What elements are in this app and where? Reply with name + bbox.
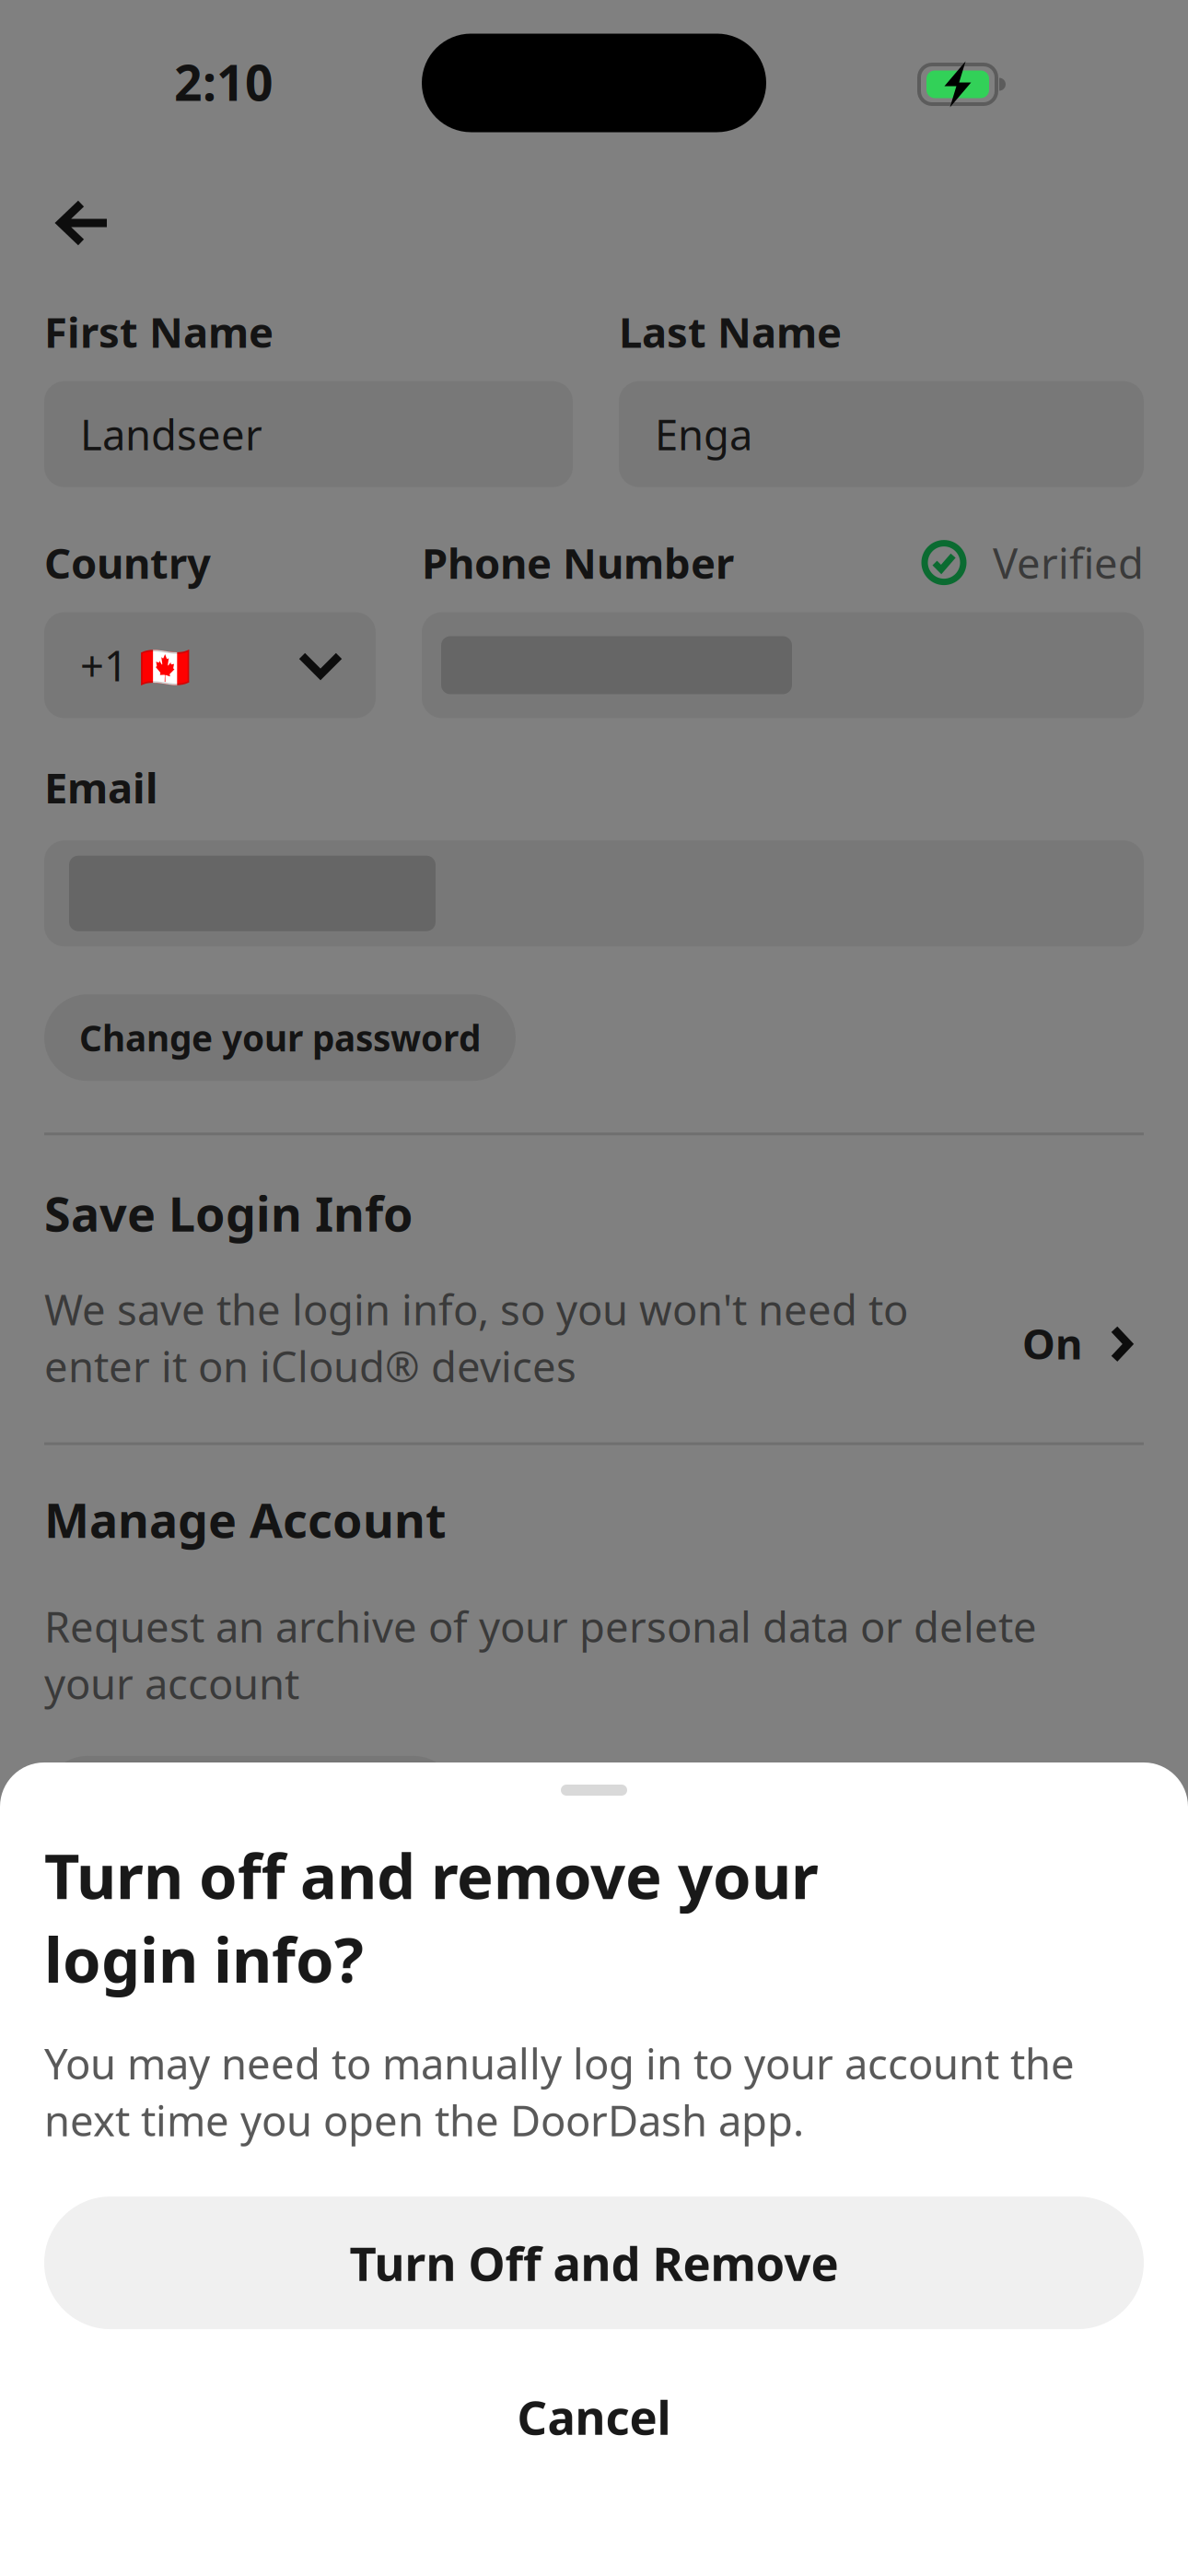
button[interactable]: Change your password <box>44 994 516 1081</box>
staticText: Enga <box>655 406 752 463</box>
staticText: Verified <box>993 534 1144 591</box>
staticText: Country <box>44 534 211 591</box>
staticText: First Name <box>44 303 274 360</box>
button[interactable]: Manage Account <box>44 1445 1144 1712</box>
staticText: You may need to manually log in to your … <box>44 2035 1075 2149</box>
staticText: Phone Number <box>422 534 734 591</box>
staticText: +1 🇨🇦 <box>80 637 191 694</box>
staticText: Change your password <box>79 1013 481 1062</box>
button[interactable]: Turn Off and Remove <box>44 2197 1144 2329</box>
staticText: Request an archive of your personal data… <box>44 1598 1037 1712</box>
staticText: 2:10 <box>174 48 274 115</box>
staticText: We save the login info, so you won't nee… <box>44 1281 908 1395</box>
staticText: Landseer <box>80 406 262 463</box>
staticText: Manage Account <box>44 1487 447 1552</box>
button[interactable]: Cancel <box>44 2385 1144 2448</box>
staticText: Turn Off and Remove <box>349 2231 839 2295</box>
staticText: Last Name <box>619 303 842 360</box>
staticText: Turn off and remove your login info? <box>44 1833 819 2001</box>
staticText: Save Login Info <box>44 1180 413 1246</box>
staticText: Cancel <box>517 2385 671 2448</box>
button[interactable]: Request an archive <box>44 1756 457 1843</box>
button[interactable]: Back <box>44 157 147 264</box>
staticText: On <box>1022 1315 1082 1371</box>
staticText: Email <box>44 759 158 816</box>
button[interactable]: +1 🇨🇦 <box>44 612 376 718</box>
button[interactable]: Save Login Info <box>44 1135 1144 1442</box>
